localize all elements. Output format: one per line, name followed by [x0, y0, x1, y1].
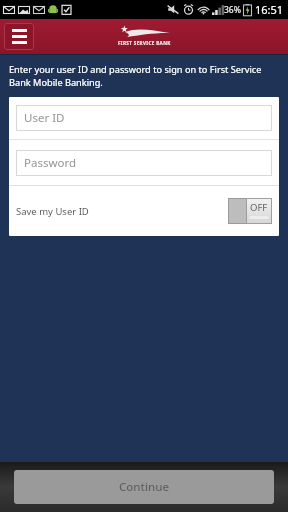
staticText: FIRST SERVICE BANK [118, 40, 171, 46]
staticText: Password [24, 155, 77, 171]
button[interactable]: OFF [228, 197, 272, 225]
staticText: Continue [119, 479, 170, 495]
button[interactable]: Password [16, 150, 272, 176]
staticText: Enter your user ID and password to sign … [9, 63, 276, 89]
button[interactable]: User ID [16, 105, 272, 131]
staticText: 16:51 [255, 2, 284, 17]
staticText: Save my User ID [16, 205, 89, 218]
button[interactable]: Menu [4, 23, 34, 50]
staticText: OFF [250, 201, 268, 214]
staticText: User ID [24, 110, 65, 126]
staticText: 36% [224, 4, 241, 16]
button[interactable]: Continue [14, 470, 274, 504]
